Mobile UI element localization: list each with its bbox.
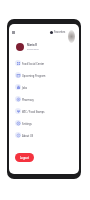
button[interactable]: Settings [15,117,79,129]
staticText: Logout [20,156,29,160]
button[interactable]: Favorites [50,30,66,34]
staticText: Pharmacy [22,98,34,101]
staticText: WIC / Food Stamps [22,110,45,113]
staticText: Food Social Center [22,62,45,65]
button[interactable]: Jobs [15,81,79,93]
staticText: Upcoming Program [22,74,46,77]
button[interactable]: Upcoming Program [15,69,79,81]
staticText: Bangsawati [27,48,39,51]
button[interactable]: Logout [15,153,34,162]
button[interactable]: Pharmacy [15,93,79,105]
button[interactable]: About US [15,129,79,141]
button[interactable]: Food Social Center [15,57,79,69]
staticText: Settings [22,122,32,125]
button[interactable]: WIC / Food Stamps [15,105,79,117]
staticText: Maria R [27,43,37,47]
staticText: About US [22,134,34,137]
staticText: Jobs [22,86,28,89]
staticText: Favorites [54,30,66,34]
button[interactable]: Maria R [16,38,79,55]
